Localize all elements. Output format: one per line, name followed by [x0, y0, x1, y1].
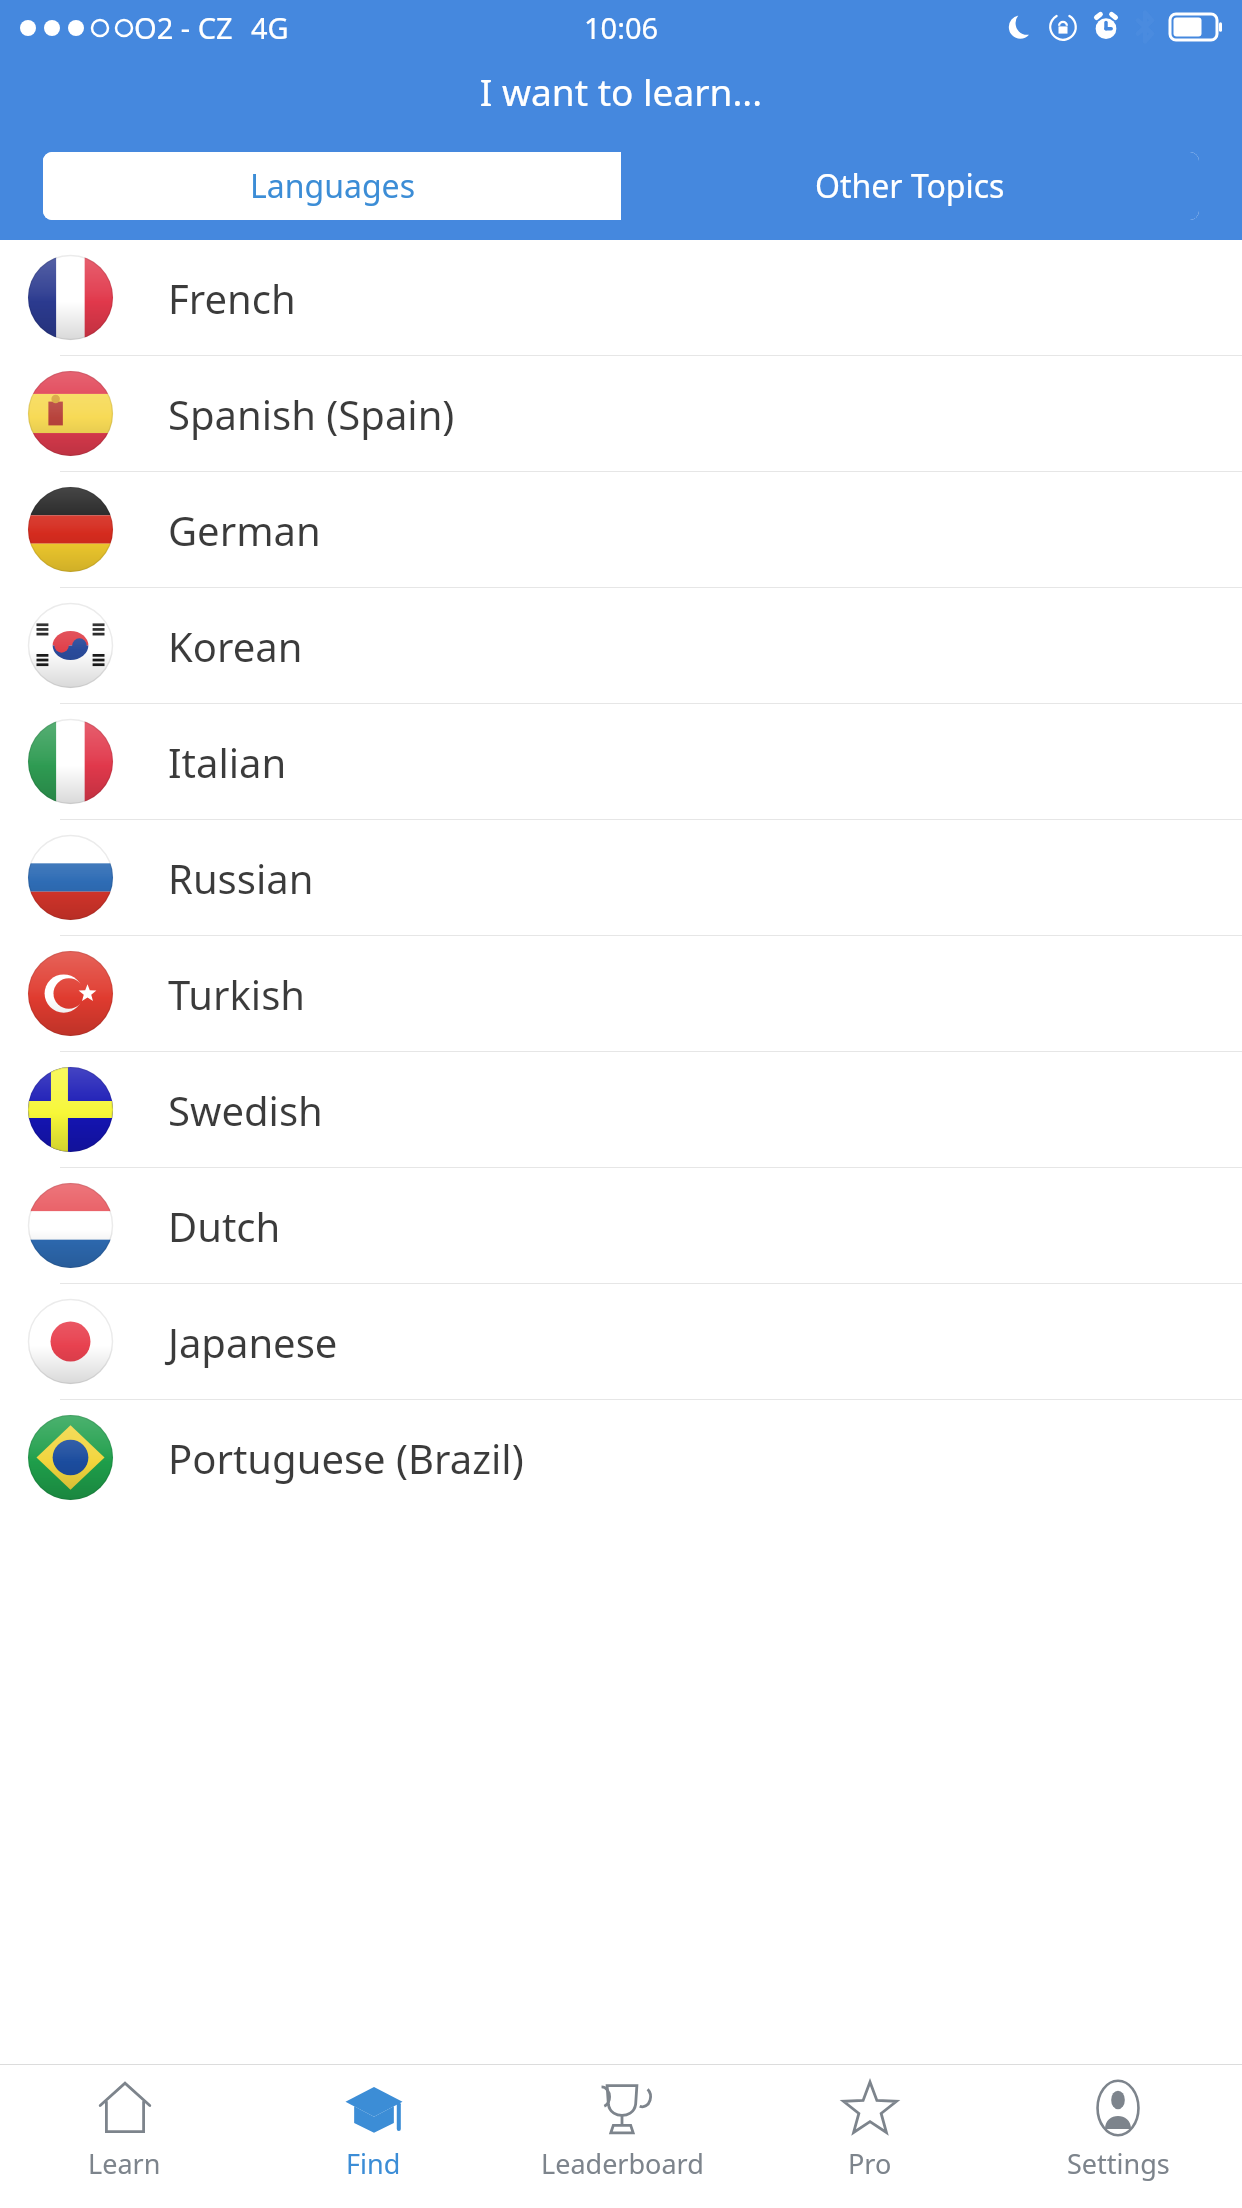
staticText: Spanish (Spain) — [168, 387, 455, 441]
staticText: 10:06 — [584, 8, 659, 47]
staticText: Dutch — [168, 1199, 281, 1253]
staticText: Russian — [168, 851, 314, 905]
staticText: Korean — [168, 619, 303, 673]
button[interactable]: Other Topics — [621, 152, 1199, 220]
staticText: Languages — [250, 164, 415, 208]
staticText: 4G — [251, 8, 289, 47]
staticText: Italian — [168, 735, 287, 789]
staticText: Pro — [848, 2145, 892, 2182]
button[interactable]: Leaderboard — [498, 2065, 746, 2208]
staticText: I want to learn... — [0, 66, 1242, 116]
button[interactable]: Japanese — [0, 1284, 1242, 1399]
staticText: Other Topics — [815, 164, 1005, 208]
button[interactable]: Learn — [0, 2065, 249, 2208]
staticText: Leaderboard — [541, 2145, 704, 2182]
button[interactable]: Russian — [0, 820, 1242, 935]
staticText: Japanese — [168, 1315, 338, 1369]
button[interactable]: Korean — [0, 588, 1242, 703]
button[interactable]: German — [0, 472, 1242, 587]
button[interactable]: Spanish (Spain) — [0, 356, 1242, 471]
staticText: Portuguese (Brazil) — [168, 1431, 524, 1485]
button[interactable]: French — [0, 240, 1242, 355]
button[interactable]: Dutch — [0, 1168, 1242, 1283]
staticText: French — [168, 271, 296, 325]
button[interactable]: Find — [249, 2065, 498, 2208]
staticText: Swedish — [168, 1083, 323, 1137]
staticText: Turkish — [168, 967, 306, 1021]
button[interactable]: Swedish — [0, 1052, 1242, 1167]
staticText: Settings — [1067, 2145, 1170, 2182]
button[interactable]: Pro — [746, 2065, 994, 2208]
button[interactable]: Italian — [0, 704, 1242, 819]
button[interactable]: Portuguese (Brazil) — [0, 1400, 1242, 1515]
button[interactable]: Settings — [994, 2065, 1242, 2208]
staticText: Find — [346, 2145, 401, 2182]
button[interactable]: Turkish — [0, 936, 1242, 1051]
button[interactable]: Languages — [43, 152, 621, 220]
staticText: Learn — [88, 2145, 161, 2182]
staticText: German — [168, 503, 321, 557]
staticText: O2 - CZ — [134, 8, 233, 47]
